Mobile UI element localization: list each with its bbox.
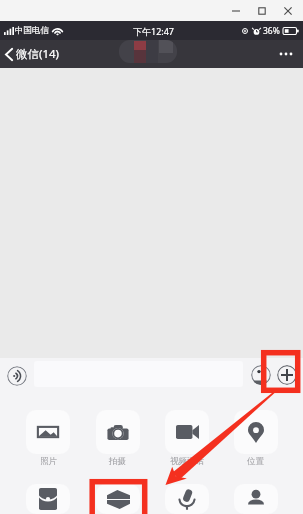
button[interactable]: 红包: [13, 484, 83, 514]
button[interactable]: 个人名片: [221, 484, 290, 514]
button[interactable]: 位置: [221, 410, 290, 467]
button[interactable]: More functions: [277, 365, 297, 385]
button[interactable]: 转账: [83, 484, 152, 514]
button[interactable]: Emoji: [251, 365, 271, 385]
button[interactable]: 视频通话: [152, 410, 221, 467]
button[interactable]: Minimize: [223, 0, 249, 21]
staticText: 36%: [263, 25, 280, 37]
staticText: 微信(14): [16, 46, 60, 62]
button[interactable]: Maximize: [249, 0, 275, 21]
staticText: 中国电信: [15, 25, 49, 36]
button[interactable]: 语音输入: [152, 484, 221, 514]
button[interactable]: More options: [275, 43, 297, 65]
staticText: 位置: [247, 456, 264, 467]
button[interactable]: 微信(14): [0, 46, 66, 62]
button[interactable]: 照片: [13, 410, 83, 467]
button[interactable]: Close: [275, 0, 301, 21]
staticText: 视频通话: [170, 456, 204, 467]
button[interactable]: 拍摄: [83, 410, 152, 467]
staticText: 下午12:47: [133, 25, 175, 37]
staticText: 照片: [40, 456, 57, 467]
button[interactable]: Voice message: [7, 366, 27, 386]
staticText: 拍摄: [109, 456, 126, 467]
